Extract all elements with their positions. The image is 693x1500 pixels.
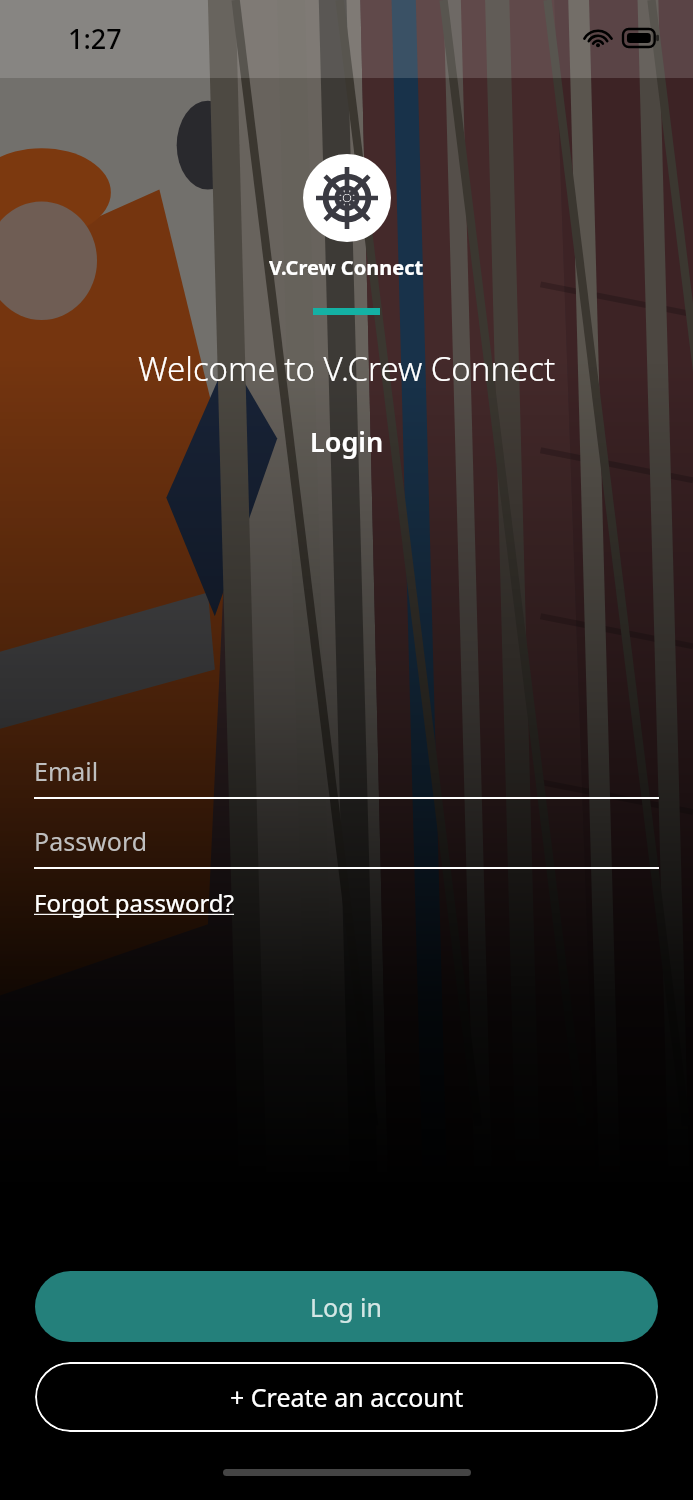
- button[interactable]: + Create an account: [35, 1362, 658, 1432]
- staticText: 1:27: [68, 20, 122, 57]
- staticText: V.Crew Connect: [269, 254, 424, 281]
- staticText: Login: [310, 423, 384, 460]
- button[interactable]: Password: [34, 824, 659, 869]
- staticText: + Create an account: [230, 1380, 464, 1414]
- staticText: Welcome to V.Crew Connect: [138, 346, 556, 391]
- other: Battery: [623, 29, 659, 47]
- staticText: Log in: [310, 1290, 383, 1324]
- button[interactable]: Forgot password?: [34, 883, 235, 922]
- button[interactable]: Email: [34, 754, 659, 799]
- staticText: Forgot password?: [34, 886, 235, 919]
- staticText: Email: [34, 754, 99, 788]
- other: Wi-Fi: [584, 28, 612, 48]
- staticText: Password: [34, 824, 148, 858]
- button[interactable]: Log in: [35, 1271, 658, 1342]
